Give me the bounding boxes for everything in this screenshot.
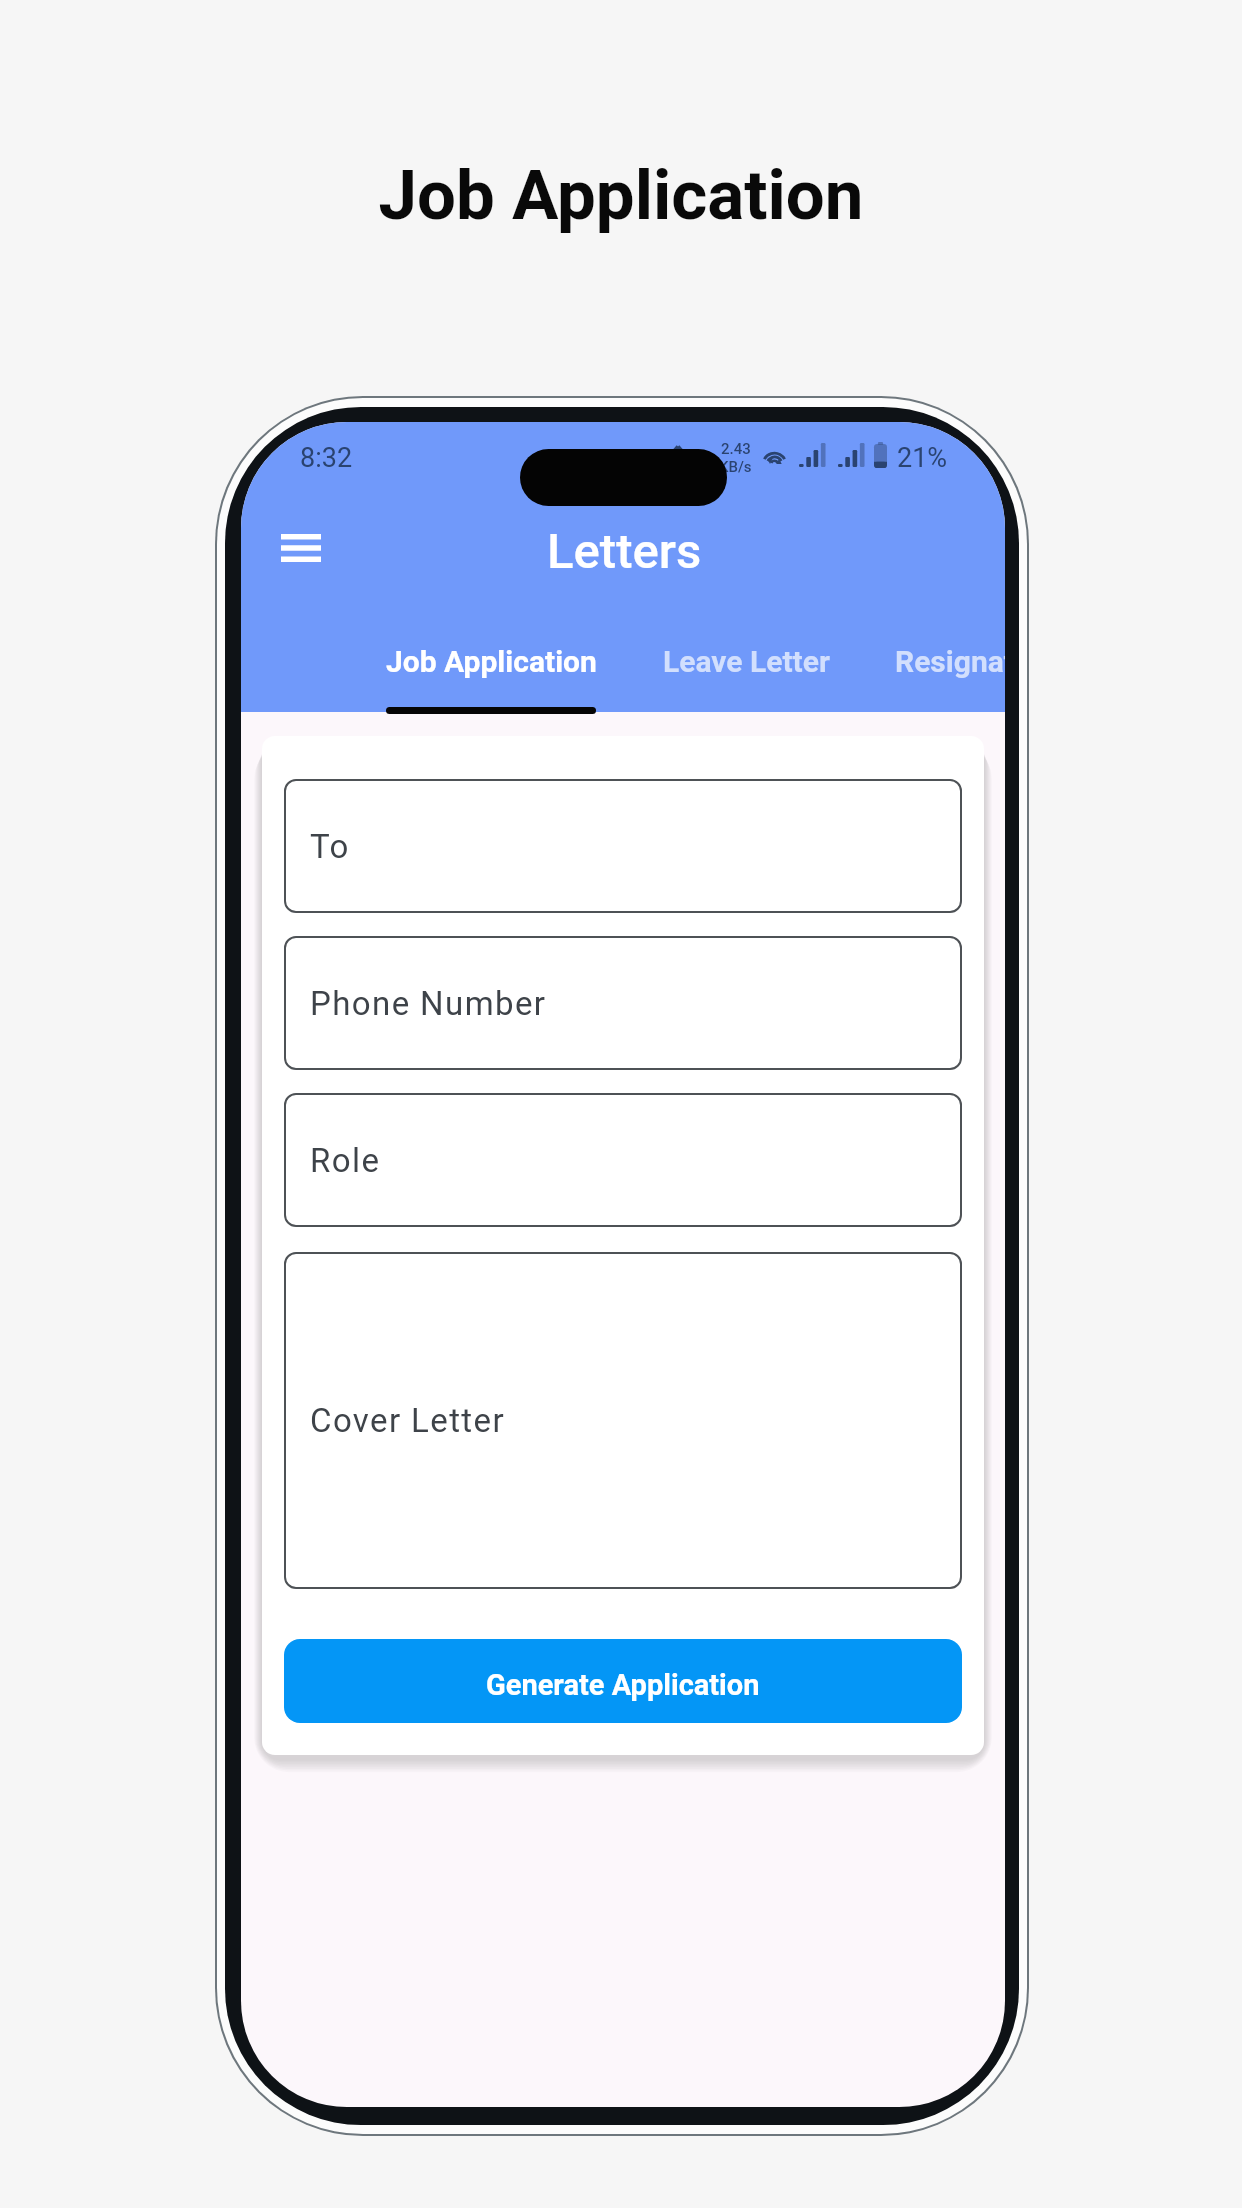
- button[interactable]: Role: [284, 1093, 962, 1227]
- staticText: Job Application: [386, 644, 597, 679]
- staticText: KB/s: [719, 458, 752, 476]
- button[interactable]: Phone Number: [284, 936, 962, 1070]
- staticText: Role: [310, 1141, 381, 1180]
- staticText: 2.43: [721, 440, 751, 458]
- button[interactable]: Leave Letter: [630, 616, 862, 714]
- staticText: Generate Application: [486, 1668, 760, 1702]
- staticText: 21%: [897, 442, 948, 474]
- button[interactable]: Job Application: [352, 616, 630, 714]
- staticText: Job Application: [0, 155, 1242, 236]
- staticText: Resignation: [895, 644, 1005, 679]
- button[interactable]: Generate Application: [284, 1639, 962, 1723]
- staticText: To: [310, 827, 350, 866]
- staticText: Phone Number: [310, 984, 547, 1023]
- staticText: 8:32: [300, 442, 353, 474]
- staticText: Leave Letter: [663, 644, 830, 679]
- button[interactable]: To: [284, 779, 962, 913]
- button[interactable]: Resignation: [862, 616, 1005, 714]
- button[interactable]: Cover Letter: [284, 1252, 962, 1589]
- staticText: Cover Letter: [310, 1401, 506, 1440]
- button[interactable]: Open navigation menu: [261, 512, 341, 584]
- staticText: Letters: [547, 523, 702, 580]
